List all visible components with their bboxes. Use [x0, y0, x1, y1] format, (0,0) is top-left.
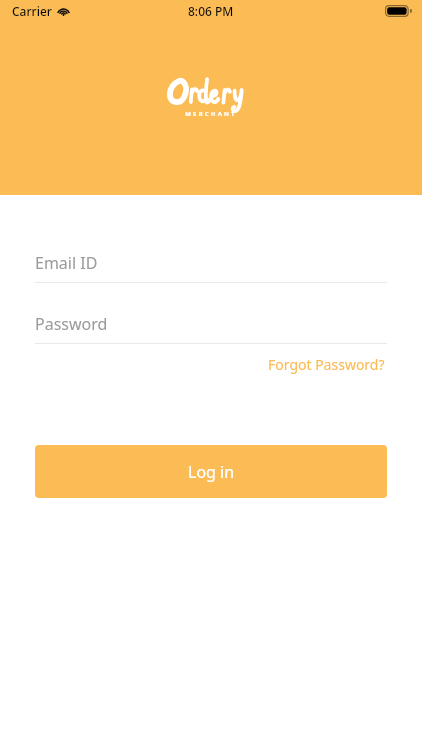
- button[interactable]: Forgot Password?: [266, 352, 387, 377]
- button[interactable]: Password: [35, 313, 387, 344]
- staticText: Password: [35, 313, 108, 335]
- staticText: Forgot Password?: [268, 355, 385, 374]
- staticText: MERCHANT: [185, 110, 237, 118]
- staticText: Carrier: [12, 3, 52, 19]
- staticText: 8:06 PM: [188, 3, 234, 19]
- staticText: Email ID: [35, 252, 98, 274]
- button[interactable]: Log in: [35, 445, 387, 498]
- button[interactable]: Email ID: [35, 252, 387, 283]
- staticText: Log in: [188, 461, 235, 483]
